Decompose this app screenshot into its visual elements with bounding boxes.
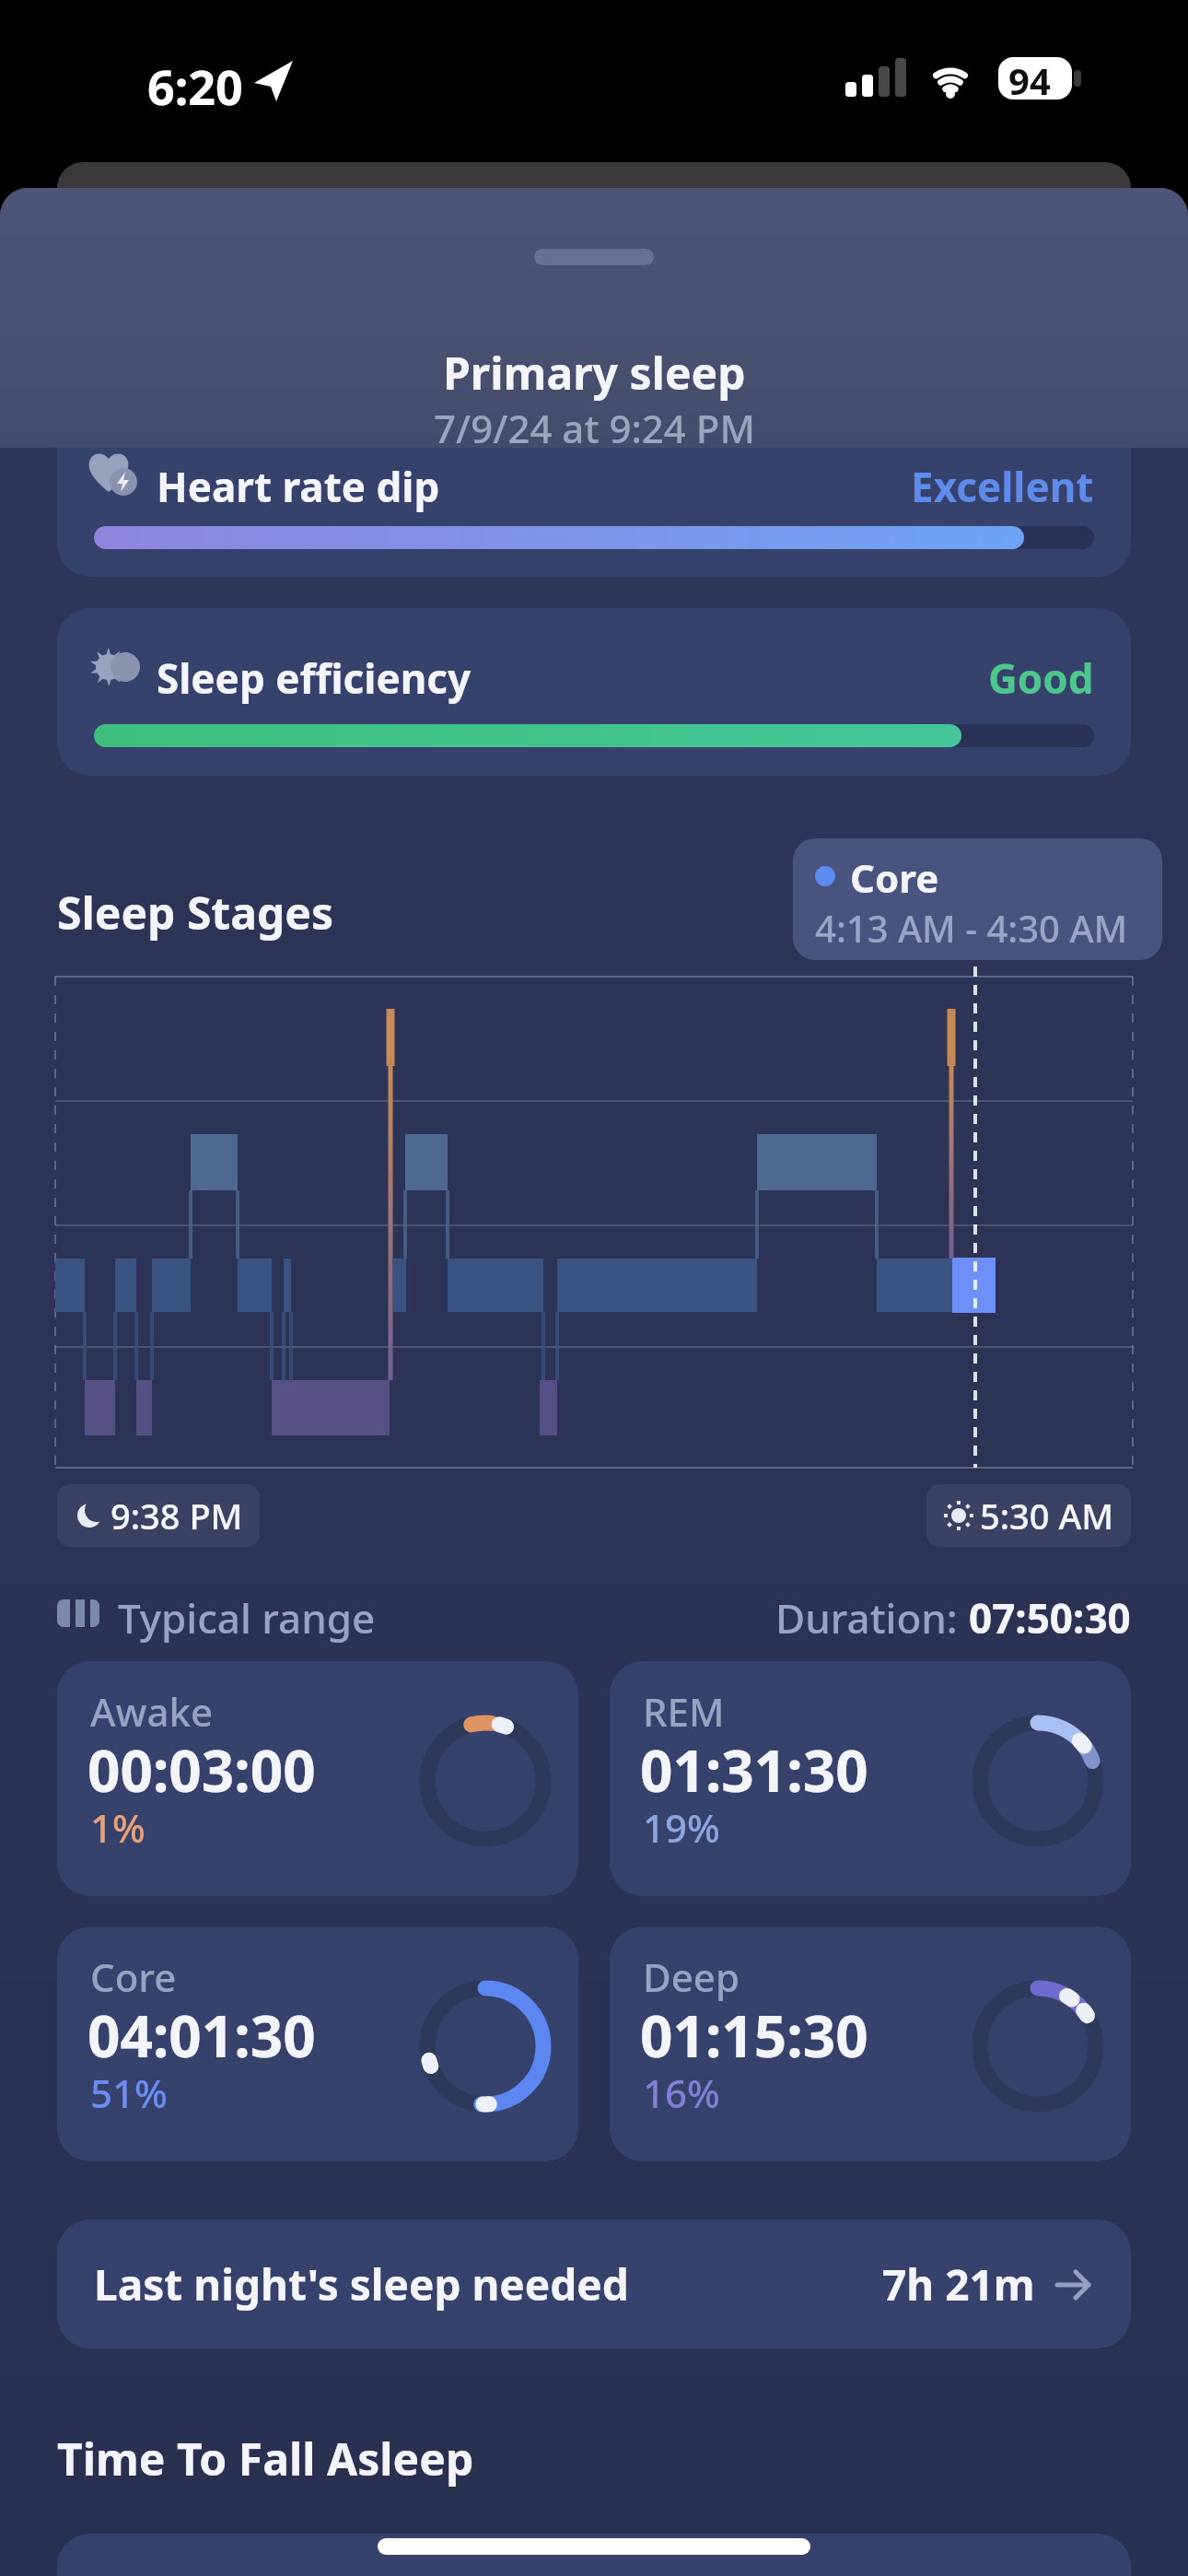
staticText: 01:31:30 — [640, 1731, 868, 1809]
button[interactable]: Core — [57, 1926, 578, 2161]
staticText: Last night's sleep needed — [94, 2255, 629, 2313]
staticText: 7h 21m — [882, 2255, 1035, 2313]
staticText: 1% — [90, 1801, 146, 1854]
staticText: 7/9/24 at 9:24 PM — [434, 402, 755, 448]
button[interactable]: Awake — [57, 1661, 578, 1896]
staticText: 51% — [90, 2067, 168, 2119]
staticText: 04:01:30 — [87, 1996, 316, 2074]
button[interactable]: Deep — [610, 1926, 1131, 2161]
staticText: Core — [850, 851, 939, 904]
staticText: Heart rate dip — [157, 459, 440, 514]
staticText: Deep — [643, 1950, 740, 2003]
staticText: 16% — [643, 2067, 720, 2119]
staticText: Awake — [90, 1685, 214, 1738]
staticText: Sleep Stages — [57, 883, 334, 943]
staticText: Core — [90, 1950, 177, 2003]
staticText: 19% — [643, 1801, 720, 1854]
staticText: Typical range — [118, 1590, 376, 1645]
staticText: 00:03:00 — [87, 1731, 316, 1809]
button[interactable]: REM — [610, 1661, 1131, 1896]
staticText: Good — [988, 650, 1094, 706]
staticText: Sleep efficiency — [157, 650, 472, 706]
staticText: 6:20 — [147, 53, 243, 119]
button[interactable] — [57, 608, 1131, 776]
staticText: 01:15:30 — [640, 1996, 868, 2074]
staticText: REM — [643, 1685, 725, 1738]
staticText: 94 — [1008, 55, 1051, 105]
staticText: Excellent — [911, 459, 1094, 514]
staticText: Time To Fall Asleep — [57, 2429, 474, 2488]
button[interactable] — [57, 387, 1131, 577]
button[interactable]: Last night's sleep needed — [57, 2219, 1131, 2348]
staticText: Primary sleep — [443, 343, 746, 403]
staticText: 9:38 PM — [111, 1492, 243, 1540]
staticText: Duration: — [775, 1590, 969, 1645]
staticText: 07:50:30 — [969, 1590, 1131, 1645]
staticText: 4:13 AM - 4:30 AM — [815, 903, 1128, 953]
staticText: 5:30 AM — [980, 1492, 1114, 1540]
